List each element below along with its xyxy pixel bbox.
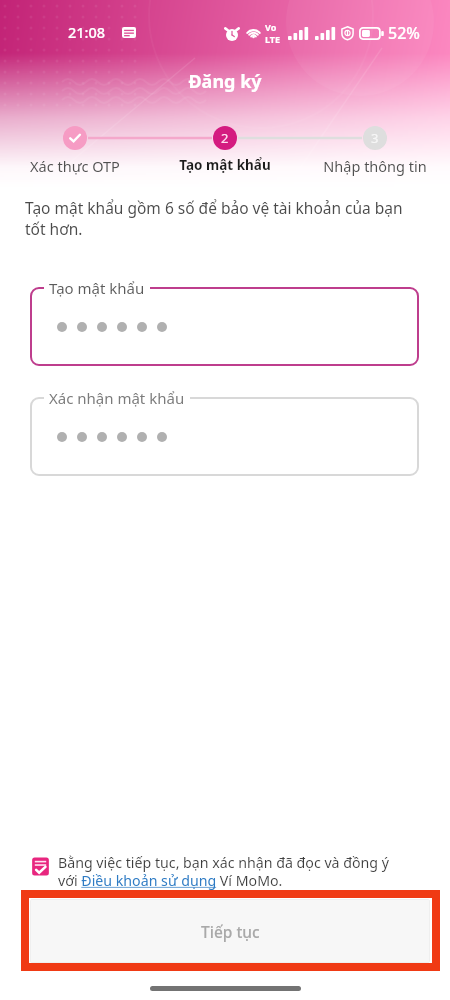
staticText: 21:08 bbox=[68, 22, 106, 42]
button[interactable]: Tiếp tục bbox=[30, 899, 430, 963]
staticText: LTE bbox=[265, 33, 281, 45]
staticText: Xác nhận mật khẩu bbox=[49, 388, 185, 408]
staticText: 3 bbox=[371, 129, 379, 147]
staticText: Xác thực OTP bbox=[0, 156, 150, 176]
staticText: 2 bbox=[221, 129, 229, 147]
staticText: Bằng việc tiếp tục, bạn xác nhận đã đọc … bbox=[58, 853, 390, 890]
staticText: Đăng ký bbox=[0, 69, 450, 94]
staticText: Tạo mật khẩu gồm 6 số để bảo vệ tài khoả… bbox=[25, 197, 414, 240]
staticText: Nhập thông tin bbox=[300, 156, 450, 176]
other: Terms bbox=[31, 857, 50, 876]
button[interactable] bbox=[30, 287, 419, 366]
staticText: Vo bbox=[265, 21, 277, 33]
staticText: Tạo mật khẩu bbox=[49, 278, 145, 298]
staticText: Tạo mật khẩu bbox=[150, 156, 300, 174]
staticText: 52% bbox=[388, 22, 420, 44]
staticText: Tiếp tục bbox=[201, 921, 260, 942]
button[interactable] bbox=[30, 397, 419, 476]
